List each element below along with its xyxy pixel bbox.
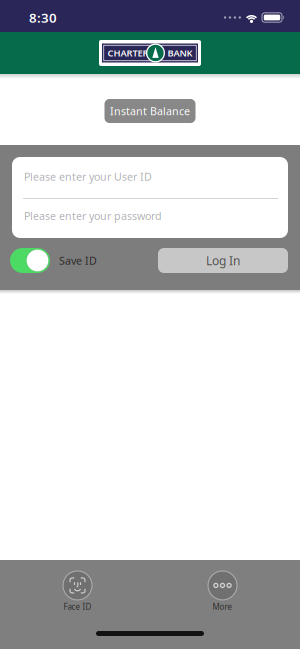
staticText: Please enter your User ID — [24, 169, 152, 184]
staticText: Save ID — [59, 253, 97, 268]
staticText: More — [212, 601, 232, 612]
staticText: Instant Balance — [110, 104, 190, 118]
button[interactable]: Instant Balance — [104, 99, 195, 123]
button[interactable]: Save ID — [10, 248, 50, 273]
staticText: 8:30 — [29, 9, 57, 26]
button[interactable]: Log In — [158, 248, 288, 273]
button[interactable]: Please enter your password — [12, 199, 288, 238]
staticText: Log In — [206, 252, 240, 268]
staticText: CHARTER — [107, 47, 148, 59]
staticText: Face ID — [63, 601, 91, 612]
button[interactable]: Please enter your User ID — [12, 157, 288, 198]
button[interactable]: More — [150, 571, 300, 612]
button[interactable]: Face ID — [0, 571, 150, 612]
staticText: Please enter your password — [24, 209, 162, 223]
staticText: BANK — [167, 47, 192, 59]
